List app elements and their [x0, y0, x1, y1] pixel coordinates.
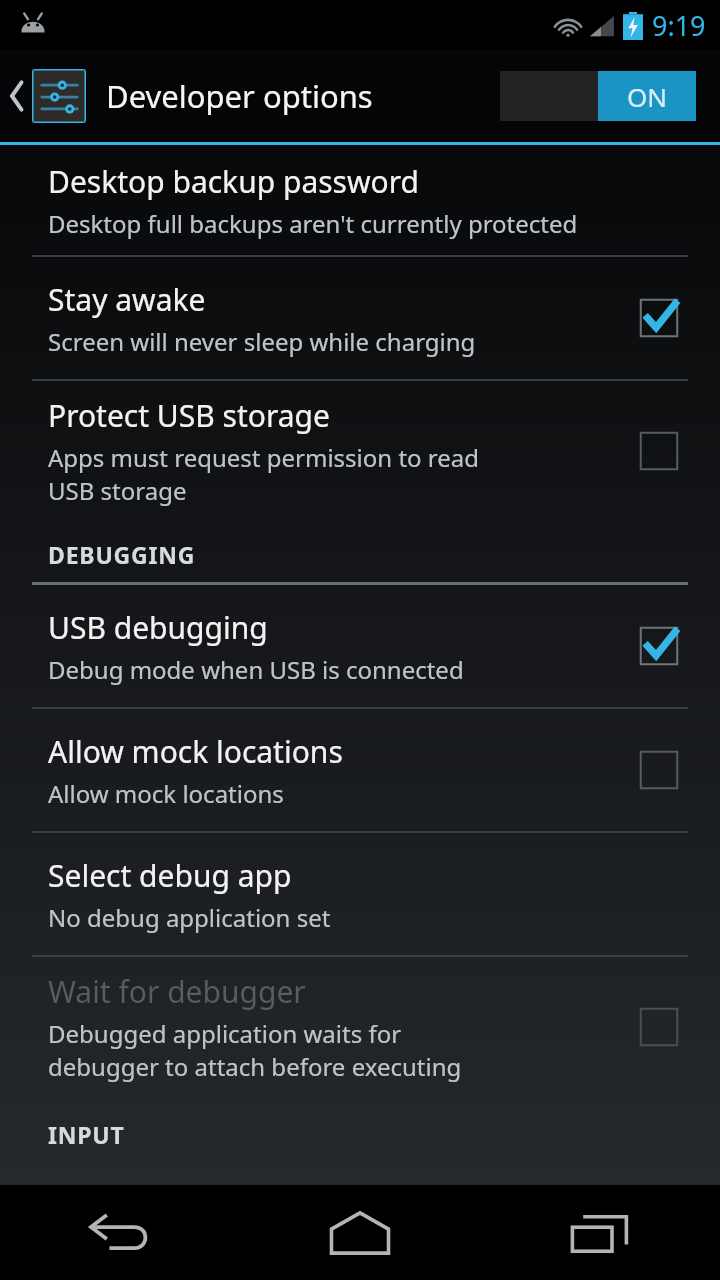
staticText: Wait for debugger: [48, 971, 306, 1012]
staticText: No debug application set: [48, 901, 331, 934]
staticText: ON: [627, 79, 668, 114]
staticText: Protect USB storage: [48, 395, 330, 436]
staticText: Desktop full backups aren't currently pr…: [48, 207, 578, 240]
staticText: Allow mock locations: [48, 777, 284, 810]
staticText: 9:19: [652, 7, 706, 44]
button[interactable]: Desktop backup password: [0, 145, 720, 255]
staticText: Allow mock locations: [48, 731, 343, 772]
button[interactable]: USB debugging: [620, 607, 698, 685]
button[interactable]: Protect USB storage: [620, 412, 698, 490]
button[interactable]: Developer options on: [500, 71, 696, 121]
button[interactable]: Allow mock locations: [620, 731, 698, 809]
button[interactable]: Stay awake: [0, 257, 720, 379]
button[interactable]: Select debug app: [0, 833, 720, 955]
button[interactable]: Recent apps: [480, 1185, 720, 1280]
staticText: Stay awake: [48, 279, 206, 320]
staticText: Debug mode when USB is connected: [48, 653, 464, 686]
staticText: Desktop backup password: [48, 161, 419, 202]
staticText: Developer options: [106, 75, 373, 117]
button[interactable]: Protect USB storage: [0, 381, 720, 521]
button[interactable]: Stay awake: [620, 279, 698, 357]
button[interactable]: Home: [240, 1185, 480, 1280]
staticText: INPUT: [48, 1119, 125, 1150]
button[interactable]: Allow mock locations: [0, 709, 720, 831]
staticText: DEBUGGING: [48, 539, 196, 570]
button[interactable]: Navigate up: [0, 69, 92, 123]
staticText: Select debug app: [48, 855, 292, 896]
button[interactable]: Back: [0, 1185, 240, 1280]
button[interactable]: USB debugging: [0, 585, 720, 707]
staticText: USB debugging: [48, 607, 268, 648]
staticText: Debugged application waits for debugger …: [48, 1017, 462, 1083]
staticText: Screen will never sleep while charging: [48, 325, 476, 358]
staticText: Apps must request permission to read USB…: [48, 441, 479, 507]
button[interactable]: Wait for debugger: [0, 957, 720, 1097]
button[interactable]: Wait for debugger: [620, 988, 698, 1066]
